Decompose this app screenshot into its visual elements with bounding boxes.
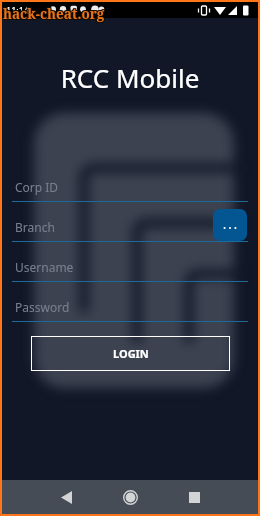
button[interactable]: Home — [112, 480, 148, 514]
button[interactable]: Browse branches — [213, 209, 247, 241]
staticText: Branch — [15, 219, 55, 235]
button[interactable]: LOGIN — [31, 336, 230, 371]
staticText: hack-cheat.org — [4, 4, 106, 22]
staticText: 11:14 — [6, 4, 30, 16]
staticText: Username — [15, 259, 74, 275]
staticText: LOGIN — [113, 346, 149, 361]
button[interactable]: Back — [48, 480, 84, 514]
staticText: Corp ID — [15, 179, 59, 195]
staticText: hack-cheat.org — [4, 5, 106, 23]
staticText: hack-cheat.org — [2, 6, 104, 24]
staticText: hack-cheat.org — [4, 6, 106, 24]
staticText: Password — [15, 299, 70, 315]
staticText: hack-cheat.org — [3, 4, 105, 22]
staticText: hack-cheat.org — [2, 5, 104, 23]
button[interactable]: Recent apps — [176, 480, 212, 514]
staticText: hack-cheat.org — [3, 6, 105, 24]
staticText: RCC Mobile — [2, 60, 258, 95]
staticText: hack-cheat.org — [2, 4, 104, 22]
staticText: hack-cheat.org — [3, 5, 105, 23]
